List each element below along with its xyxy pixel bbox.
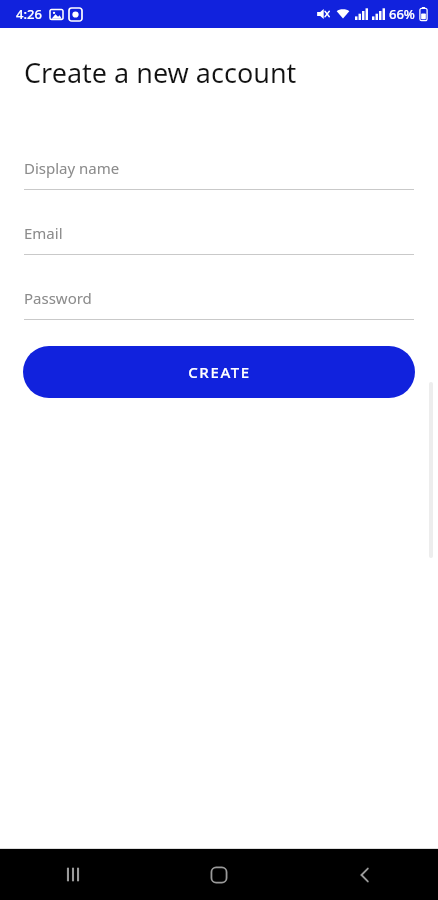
staticText: Create a new account xyxy=(24,54,297,91)
staticText: Password xyxy=(24,288,92,308)
staticText: 66% xyxy=(389,5,415,23)
staticText: CREATE xyxy=(188,362,251,382)
staticText: Display name xyxy=(24,158,120,178)
button[interactable]: Email xyxy=(24,212,414,255)
staticText: 4:26 xyxy=(16,5,42,23)
button[interactable]: Home xyxy=(146,849,292,900)
button[interactable]: CREATE xyxy=(23,346,415,398)
button[interactable]: Recent apps xyxy=(0,849,146,900)
button[interactable]: Display name xyxy=(24,147,414,190)
button[interactable]: Password xyxy=(24,277,414,320)
button[interactable]: Back xyxy=(292,849,438,900)
staticText: Email xyxy=(24,223,63,243)
